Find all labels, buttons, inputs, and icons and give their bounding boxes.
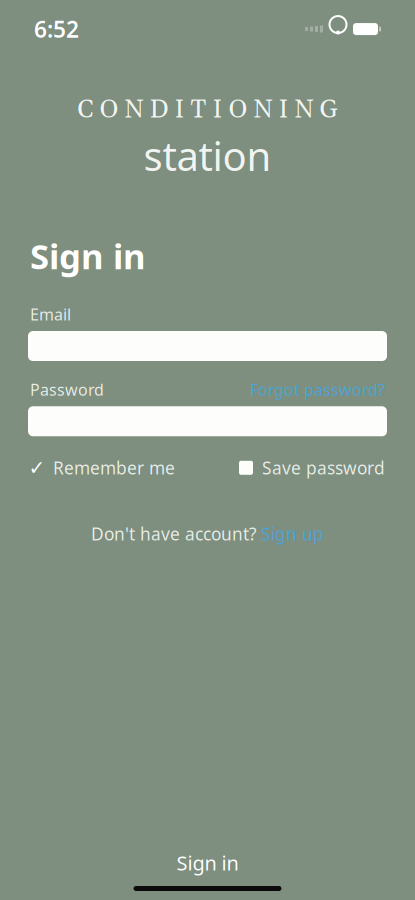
button[interactable]: ✓ [30,456,175,479]
staticText: C O N D I T I O N I N G [77,94,337,126]
staticText: ✓ [28,456,45,479]
button[interactable]: Save password [239,456,385,479]
staticText: Don't have account? [91,522,257,545]
button[interactable]: Forgot password? [250,379,385,400]
staticText: Email [30,304,71,325]
staticText: Remember me [53,456,175,479]
button[interactable] [28,331,387,361]
button[interactable]: Sign in [0,845,415,880]
staticText: station [143,128,271,183]
staticText: Sign up [261,522,324,545]
button[interactable]: Don't have account? [91,522,324,545]
button[interactable] [28,406,387,436]
staticText: Sign in [30,233,146,279]
staticText: 6:52 [34,14,79,44]
staticText: Forgot password? [250,379,385,400]
staticText: Password [30,379,104,400]
staticText: Sign in [176,849,238,876]
staticText: Save password [262,456,385,479]
